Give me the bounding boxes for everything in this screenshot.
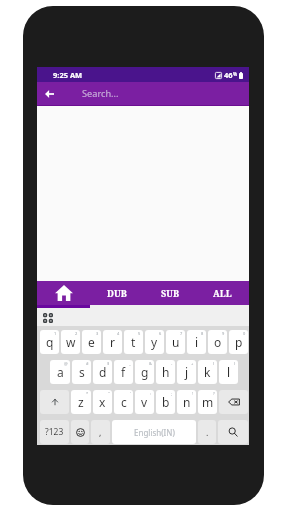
button[interactable]: w [61,330,80,354]
button[interactable]: f [114,360,133,384]
button[interactable]: Search [218,420,248,444]
button[interactable]: c [114,390,133,414]
staticText: * [86,391,89,396]
staticText: 6 [159,331,162,336]
staticText: v [141,394,148,410]
button[interactable]: ?123 [40,420,69,444]
staticText: 9 [222,331,225,336]
button[interactable]: m [198,390,217,414]
button[interactable]: i [187,330,206,354]
staticText: _ [129,361,131,366]
staticText: ' [130,391,131,396]
staticText: a [57,364,64,380]
staticText: t [131,334,136,350]
staticText: ? [213,391,215,396]
staticText: 2 [75,331,78,336]
button[interactable]: b [156,390,175,414]
button[interactable]: Back [41,86,57,102]
staticText: ! [192,391,194,396]
button[interactable]: t [124,330,143,354]
button[interactable]: u [166,330,185,354]
staticText: - [171,361,173,366]
staticText: Search... [82,87,119,100]
staticText: d [99,364,107,380]
staticText: + [191,361,194,366]
staticText: " [108,391,110,396]
staticText: o [214,334,222,350]
staticText: n [183,394,191,410]
button[interactable]: Home [37,281,90,305]
staticText: p [235,334,243,350]
button[interactable]: s [72,360,91,384]
staticText: @ [64,361,68,366]
button[interactable]: e [82,330,101,354]
staticText: l [227,364,231,380]
staticText: u [172,334,180,350]
button[interactable]: p [229,330,248,354]
button[interactable]: r [103,330,122,354]
button[interactable]: Shift [40,390,69,414]
button[interactable]: y [145,330,164,354]
staticText: e [88,334,95,350]
staticText: ALL [213,287,232,299]
button[interactable]: g [135,360,154,384]
staticText: s [79,364,85,380]
staticText: 1 [54,331,57,336]
button[interactable]: DUB [90,281,143,305]
button[interactable]: , [91,420,110,444]
staticText: q [46,334,54,350]
staticText: 5 [138,331,141,336]
staticText: ) [234,361,236,366]
staticText: i [195,334,199,350]
staticText: 4 [117,331,120,336]
staticText: : [150,391,152,396]
button[interactable]: Emoji [71,420,89,444]
button[interactable]: k [198,360,217,384]
staticText: x [99,394,106,410]
staticText: 7 [180,331,183,336]
staticText: 9:25 AM [53,70,83,80]
button[interactable]: v [135,390,154,414]
button[interactable]: z [71,390,91,414]
staticText: ; [171,391,173,396]
staticText: 8 [201,331,204,336]
staticText: ( [213,361,215,366]
button[interactable]: h [156,360,175,384]
button[interactable]: o [208,330,227,354]
staticText: ?123 [45,426,64,438]
staticText: f [121,364,126,380]
staticText: w [66,334,76,350]
staticText: SUB [161,287,179,299]
button[interactable]: . [198,420,216,444]
staticText: & [149,361,152,366]
button[interactable]: x [93,390,112,414]
button[interactable]: English(IN) [112,420,196,444]
staticText: c [121,394,127,410]
button[interactable]: q [40,330,59,354]
button[interactable]: Backspace [219,390,248,414]
button[interactable]: SUB [143,281,196,305]
staticText: . [206,426,209,438]
staticText: 0 [243,331,246,336]
button[interactable]: n [177,390,196,414]
staticText: j [185,364,189,380]
button[interactable]: ALL [196,281,249,305]
staticText: z [78,394,84,410]
staticText: $ [107,361,110,366]
button[interactable]: l [219,360,238,384]
staticText: DUB [107,287,127,299]
button[interactable]: a [50,360,70,384]
staticText: English(IN) [134,427,175,438]
button[interactable]: Keyboard options [41,311,54,324]
staticText: y [151,334,158,350]
button[interactable]: j [177,360,196,384]
staticText: r [110,334,115,350]
staticText: % [233,71,238,77]
staticText: 3 [96,331,99,336]
staticText: k [204,364,211,380]
button[interactable]: d [93,360,112,384]
staticText: h [162,364,170,380]
staticText: , [99,426,102,438]
staticText: 46 [224,70,233,80]
staticText: b [162,394,170,410]
